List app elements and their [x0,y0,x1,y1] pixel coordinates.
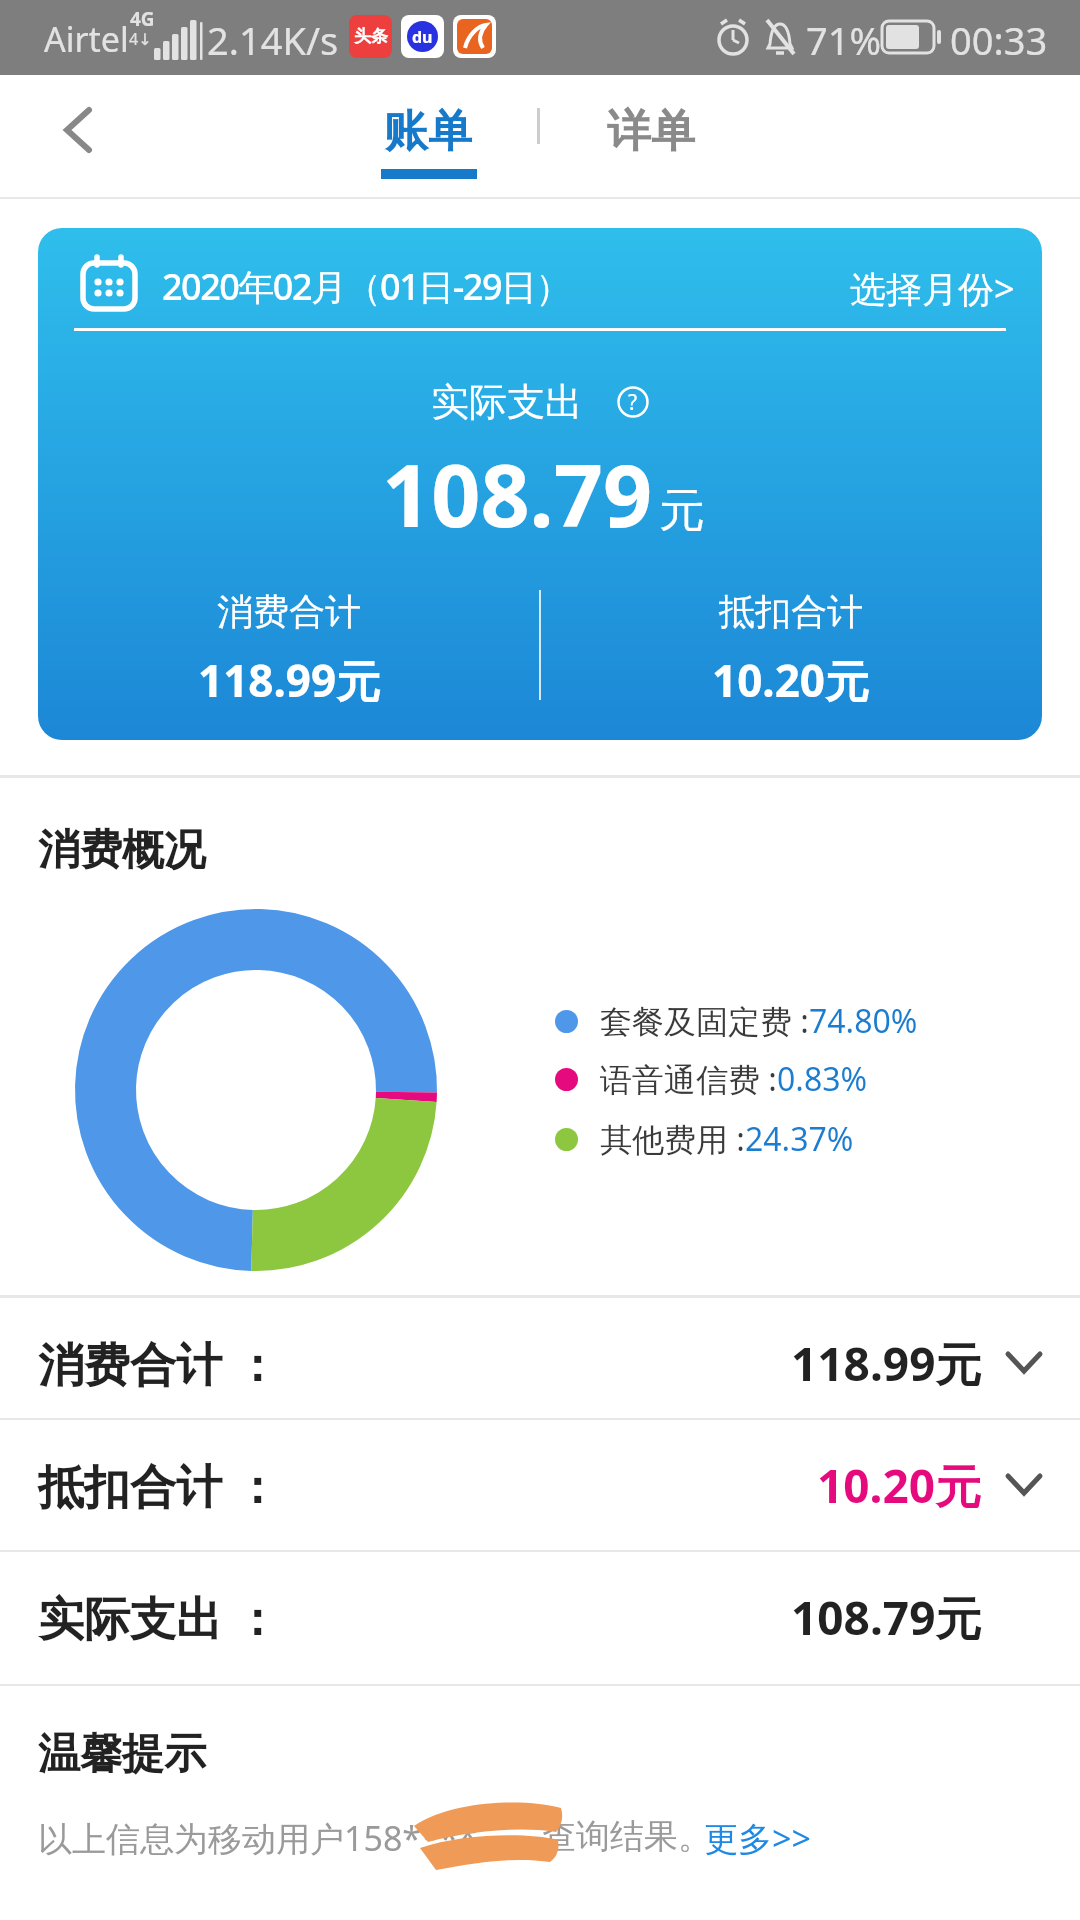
staticText: 账单 [380,104,476,159]
staticText: 118.99元 [791,1332,982,1395]
staticText: 套餐及固定费 : [600,999,809,1043]
staticText: 温馨提示 [38,1728,206,1781]
staticText: 消费合计 [217,589,361,634]
staticText: 更多>> [704,1815,811,1861]
staticText: 2020年02月（01日-29日） [162,262,570,311]
staticText: 详单 [603,104,699,159]
staticText: 10.20元 [712,650,870,710]
staticText: 2.14K/s [207,14,339,66]
staticText: 抵扣合计 [719,589,863,634]
staticText: 抵扣合计 ： [38,1454,280,1517]
staticText: 0.83% [777,1057,868,1101]
staticText: 118.99元 [198,650,381,710]
staticText: 108.79元 [791,1586,982,1649]
staticText: 选择月份> [850,264,1015,313]
staticText: 语音通信费 : [600,1057,777,1101]
staticText: 4G [130,6,155,32]
staticText: 74.80% [809,999,918,1043]
staticText: 实际支出 [431,378,583,426]
staticText: 24.37% [745,1117,854,1161]
staticText: 以上信息为移动用户158**** [38,1815,478,1861]
staticText: 实际支出 ： [38,1586,280,1649]
staticText: 头条 [354,26,388,47]
staticText: 其他费用 : [600,1117,745,1161]
staticText: 查询结果。 [542,1815,712,1858]
staticText: 元 [659,482,705,540]
staticText: 4↓ [129,28,152,50]
staticText: 10.20元 [817,1454,982,1517]
staticText: ? [628,388,638,417]
staticText: du [412,26,433,48]
staticText: 108.79 [382,435,653,552]
staticText: 消费概况 [38,824,206,877]
staticText: 00:33 [950,14,1048,66]
staticText: Airtel [44,16,129,62]
staticText: 71% [806,14,882,66]
staticText: 消费合计 ： [38,1332,280,1395]
